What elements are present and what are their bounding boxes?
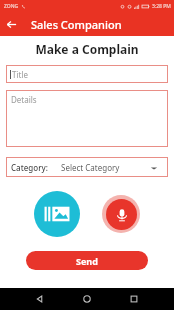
staticText: ZONG [4, 3, 19, 10]
staticText: Send [76, 255, 98, 267]
button[interactable]: Recent apps [126, 291, 142, 307]
staticText: Sales Companion [31, 17, 122, 32]
staticText: 3:28 PM [152, 3, 171, 10]
button[interactable]: Details [6, 90, 168, 147]
button[interactable]: Send [26, 251, 148, 270]
staticText: Details [11, 94, 37, 105]
button[interactable]: Record voice note [106, 199, 137, 230]
button[interactable]: Title [6, 65, 168, 83]
button[interactable]: Attach image from gallery [34, 191, 80, 237]
button[interactable]: Category: [6, 157, 168, 177]
staticText: Category: [11, 162, 48, 173]
staticText: Make a Complain [0, 41, 174, 57]
staticText: Title [12, 69, 28, 80]
button[interactable]: Back [0, 13, 23, 36]
button[interactable]: Back [32, 291, 48, 307]
button[interactable]: Home [79, 291, 95, 307]
staticText: Select Category [61, 162, 120, 173]
